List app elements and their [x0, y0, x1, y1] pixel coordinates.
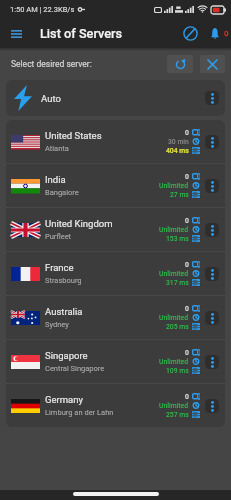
staticText: 0	[185, 217, 189, 225]
button[interactable]: More options	[205, 399, 219, 413]
staticText: 0	[185, 261, 189, 269]
button[interactable]: More options	[205, 135, 219, 149]
button[interactable]: Auto	[6, 80, 225, 116]
staticText: India	[45, 174, 66, 185]
staticText: 0	[185, 393, 189, 401]
staticText: Strasbourg	[45, 276, 82, 285]
button[interactable]: United Kingdom	[6, 208, 225, 251]
staticText: 109 ms	[166, 367, 189, 375]
button[interactable]: More options	[205, 179, 219, 193]
staticText: Auto	[41, 93, 61, 104]
staticText: 1:50 AM | 22.3KB/s	[10, 5, 75, 14]
button[interactable]: More options	[205, 355, 219, 369]
staticText: Purfleet	[45, 232, 72, 241]
staticText: United States	[45, 130, 102, 141]
staticText: Select desired server:	[11, 59, 92, 69]
staticText: Unlimited	[159, 358, 189, 366]
staticText: Sydney	[45, 320, 69, 329]
button[interactable]: Australia	[6, 296, 225, 339]
button[interactable]: More options	[205, 311, 219, 325]
button[interactable]: Germany	[6, 384, 225, 427]
button[interactable]: United States	[6, 120, 225, 163]
button[interactable]: More options	[205, 223, 219, 237]
staticText: Unlimited	[159, 270, 189, 278]
button[interactable]: VPN disconnected	[177, 19, 203, 48]
staticText: Atlanta	[45, 144, 69, 153]
button[interactable]: France	[6, 252, 225, 295]
staticText: Australia	[45, 306, 83, 317]
button[interactable]: Singapore	[6, 340, 225, 383]
staticText: 257 ms	[166, 411, 189, 419]
staticText: Germany	[45, 394, 83, 405]
staticText: 0	[224, 29, 229, 38]
staticText: 30 min	[168, 138, 189, 146]
staticText: Unlimited	[159, 402, 189, 410]
staticText: 0	[185, 305, 189, 313]
staticText: 27 ms	[170, 191, 189, 199]
staticText: 153 ms	[166, 235, 189, 243]
staticText: 404 ms	[166, 147, 189, 155]
staticText: Limburg an der Lahn	[45, 408, 114, 417]
button[interactable]: More options	[205, 91, 219, 105]
staticText: 0	[185, 129, 189, 137]
staticText: 205 ms	[166, 323, 189, 331]
staticText: Bangalore	[45, 188, 79, 197]
staticText: France	[45, 262, 74, 273]
button[interactable]: Refresh	[167, 55, 193, 73]
button[interactable]: Clear	[200, 55, 225, 73]
button[interactable]: India	[6, 164, 225, 207]
button[interactable]: Menu	[0, 19, 33, 48]
staticText: Unlimited	[159, 314, 189, 322]
staticText: Singapore	[45, 350, 88, 361]
staticText: 0	[185, 349, 189, 357]
button[interactable]: More options	[205, 267, 219, 281]
button[interactable]: Notifications	[205, 19, 224, 48]
staticText: United Kingdom	[45, 218, 113, 229]
staticText: Unlimited	[159, 226, 189, 234]
staticText: 0	[185, 173, 189, 181]
staticText: List of Servers	[40, 26, 123, 41]
staticText: Central Singapore	[45, 364, 105, 373]
staticText: Unlimited	[159, 182, 189, 190]
staticText: 317 ms	[166, 279, 189, 287]
